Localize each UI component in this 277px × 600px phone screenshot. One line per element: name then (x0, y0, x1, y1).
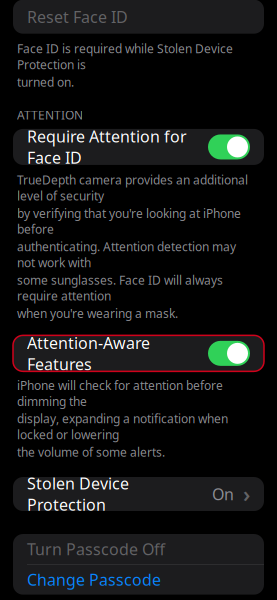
staticText: display, expanding a notification when l… (17, 411, 228, 443)
staticText: Turn Passcode Off (27, 538, 165, 560)
button[interactable]: Reset Face ID (13, 0, 264, 34)
button[interactable]: Stolen Device Protection (13, 477, 264, 511)
staticText: turned on. (17, 74, 74, 90)
staticText: Reset Face ID (27, 6, 128, 27)
staticText: iPhone will check for attention before d… (17, 377, 223, 409)
staticText: Change Passcode (27, 569, 161, 590)
staticText: by verifying that you're looking at iPho… (17, 205, 241, 237)
button[interactable]: Turn Passcode Off (13, 534, 264, 564)
staticText: ATTENTION (17, 107, 83, 123)
staticText: Attention-Aware Features (27, 332, 150, 375)
button[interactable]: Change Passcode (13, 565, 264, 595)
staticText: some sunglasses. Face ID will always req… (17, 272, 223, 304)
staticText: when you're wearing a mask. (17, 305, 178, 321)
staticText: Face ID is required while Stolen Device … (17, 41, 233, 73)
staticText: Stolen Device Protection (27, 473, 129, 515)
staticText: Require Attention for Face ID (27, 126, 187, 168)
staticText: › (243, 480, 250, 508)
staticText: the volume of some alerts. (17, 444, 165, 460)
button[interactable]: Attention-Aware Features (13, 335, 264, 371)
staticText: authenticating. Attention detection may … (17, 239, 236, 271)
staticText: On (212, 483, 234, 505)
staticText: TrueDepth camera provides an additional … (17, 172, 248, 204)
button[interactable]: Require Attention for Face ID (13, 129, 264, 165)
